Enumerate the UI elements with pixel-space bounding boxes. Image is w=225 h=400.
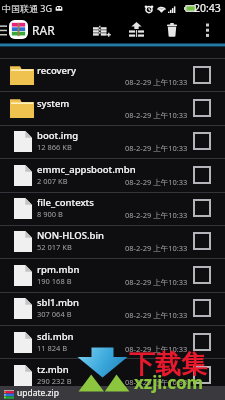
button[interactable]: Select sdi.mbn: [193, 333, 211, 351]
staticText: RAR: [32, 22, 55, 38]
staticText: 下载集: [129, 348, 207, 381]
staticText: rpm.mbn: [37, 263, 80, 276]
button[interactable]: rpm.mbn: [0, 259, 225, 291]
staticText: 08-2-29 上午10:33: [125, 310, 188, 320]
staticText: tz.mbn: [37, 363, 69, 376]
button[interactable]: sbl1.mbn: [0, 292, 225, 324]
staticText: emmc_appsboot.mbn: [37, 163, 136, 176]
button[interactable]: Delete: [154, 16, 190, 43]
staticText: file_contexts: [37, 196, 94, 209]
staticText: 8 900 B: [37, 209, 63, 219]
staticText: 190 168 B: [37, 276, 72, 286]
button[interactable]: Add to archive: [84, 16, 120, 43]
button[interactable]: Extract: [119, 16, 154, 43]
button[interactable]: Select rpm.mbn: [193, 266, 211, 284]
button[interactable]: Select boot.img: [193, 132, 211, 150]
button[interactable]: Select NON-HLOS.bin: [193, 232, 211, 250]
button[interactable]: More options: [192, 16, 223, 43]
button[interactable]: sdi.mbn: [0, 326, 225, 358]
staticText: 中国联通 3G: [2, 2, 53, 14]
button[interactable]: Select system: [193, 99, 211, 117]
staticText: 08-2-29 上午10:33: [125, 143, 188, 153]
button[interactable]: Select tz.mbn: [193, 366, 211, 384]
button[interactable]: Select sbl1.mbn: [193, 299, 211, 317]
staticText: 08-2-29 上午10:33: [125, 210, 188, 220]
button[interactable]: emmc_appsboot.mbn: [0, 159, 225, 191]
staticText: sbl1.mbn: [37, 296, 79, 309]
button[interactable]: boot.img: [0, 125, 225, 157]
other: Navigate up: [0, 25, 7, 35]
staticText: system: [37, 97, 70, 110]
staticText: 12 866 KB: [37, 142, 72, 152]
staticText: 2 007 KB: [37, 176, 68, 186]
staticText: 52 017 KB: [37, 242, 72, 252]
button[interactable]: Select emmc_appsboot.mbn: [193, 166, 211, 184]
button[interactable]: NON-HLOS.bin: [0, 225, 225, 257]
staticText: 08-2-29 上午10:33: [125, 177, 188, 187]
button[interactable]: Select file_contexts: [193, 199, 211, 217]
staticText: 290 232 B: [37, 376, 72, 386]
staticText: boot.img: [37, 129, 79, 142]
staticText: 08-2-29 上午10:33: [125, 110, 188, 120]
staticText: 08-2-29 上午10:33: [125, 243, 188, 253]
staticText: 08-2-29 上午10:33: [125, 277, 188, 287]
button[interactable]: recovery: [0, 59, 225, 91]
staticText: 20:43: [194, 1, 221, 15]
staticText: 307 064 B: [37, 309, 72, 319]
button[interactable]: system: [0, 92, 225, 124]
staticText: xzji.com: [134, 371, 204, 394]
button[interactable]: Select recovery: [193, 66, 211, 84]
staticText: 11 824 B: [37, 343, 68, 353]
button[interactable]: tz.mbn: [0, 359, 225, 391]
staticText: NON-HLOS.bin: [37, 229, 104, 242]
button[interactable]: Navigate up: [0, 20, 55, 39]
button[interactable]: update.zip: [0, 386, 225, 400]
staticText: sdi.mbn: [37, 330, 74, 343]
staticText: 08-2-29 上午10:33: [125, 344, 188, 354]
staticText: 08-2-29 上午10:33: [125, 77, 188, 87]
staticText: recovery: [37, 64, 77, 77]
staticText: 08-2-29 上午10:33: [125, 377, 188, 387]
button[interactable]: file_contexts: [0, 192, 225, 224]
staticText: update.zip: [17, 387, 60, 399]
